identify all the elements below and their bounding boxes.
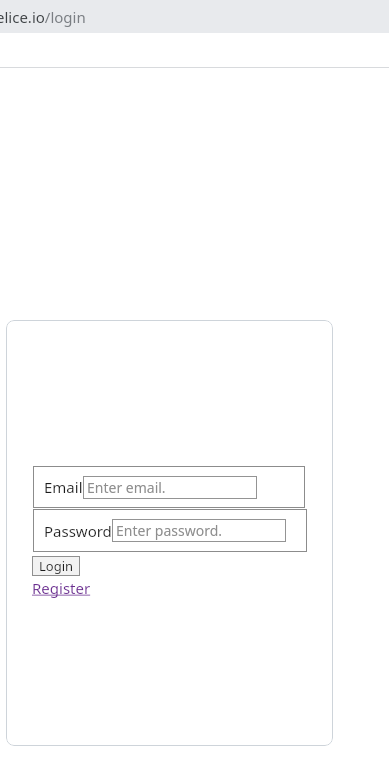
- staticText: Email: [44, 477, 83, 497]
- button[interactable]: Login: [32, 556, 80, 576]
- button[interactable]: elice.io/login: [0, 0, 389, 33]
- staticText: elice.io/login: [0, 7, 86, 27]
- staticText: Password: [44, 521, 112, 541]
- staticText: Enter password.: [116, 521, 223, 540]
- button[interactable]: Email: [33, 466, 305, 508]
- staticText: Enter email.: [87, 478, 166, 497]
- button[interactable]: Password: [33, 509, 307, 552]
- staticText: Login: [39, 557, 74, 575]
- button[interactable]: Register: [32, 578, 91, 598]
- staticText: Register: [32, 578, 91, 598]
